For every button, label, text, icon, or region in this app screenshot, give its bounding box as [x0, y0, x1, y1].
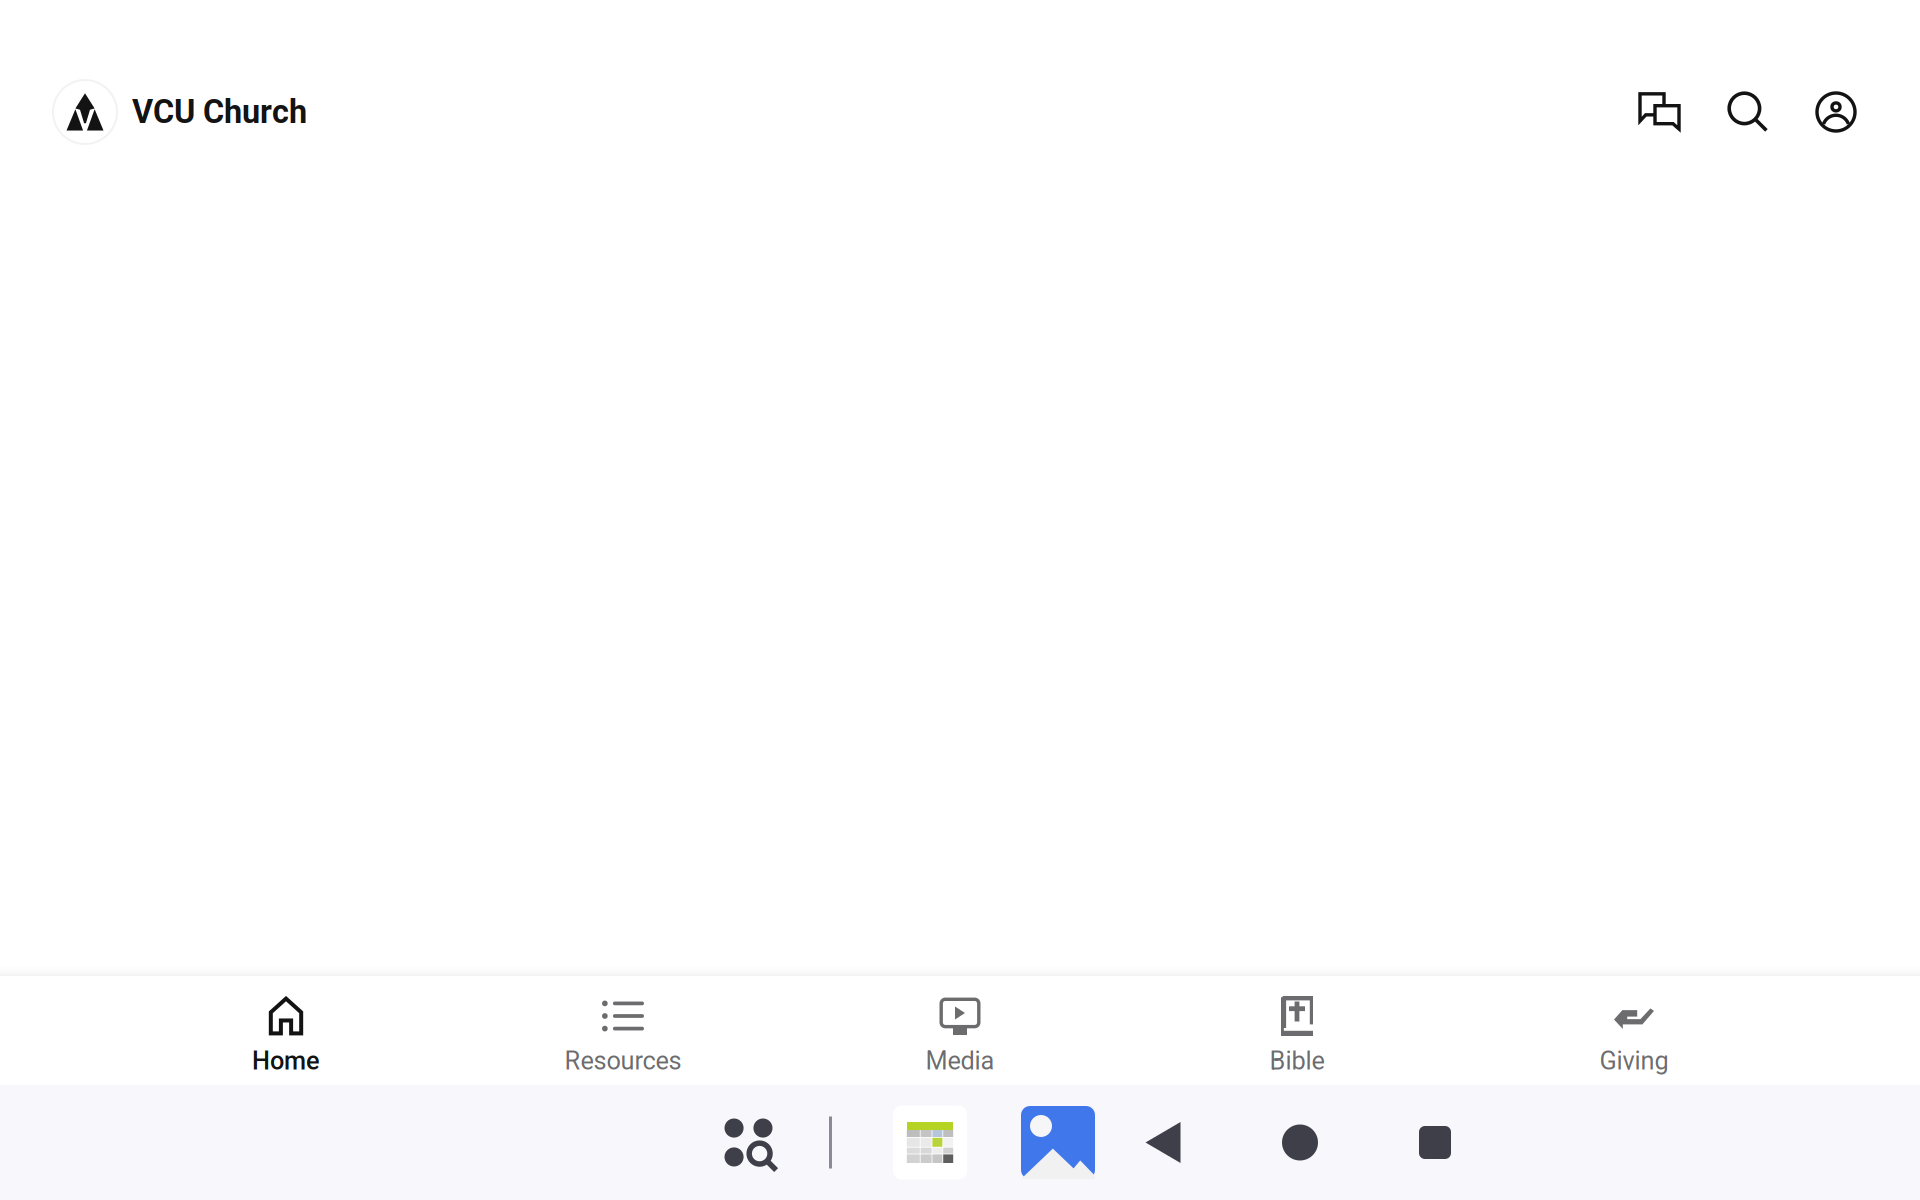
staticText: Bible [1269, 1046, 1324, 1076]
staticText: Resources [564, 1046, 681, 1076]
button[interactable]: Giving [1465, 976, 1802, 1085]
button[interactable]: Home [117, 976, 454, 1085]
button[interactable]: Recent app [893, 1105, 967, 1179]
button[interactable]: Home [1260, 1096, 1340, 1188]
button[interactable]: All apps [724, 1096, 777, 1188]
button[interactable]: VCU Church [0, 80, 323, 144]
staticText: Giving [1599, 1046, 1668, 1076]
button[interactable]: Search [1704, 77, 1792, 147]
button[interactable]: Bible [1128, 976, 1465, 1085]
button[interactable]: Photos [1021, 1106, 1095, 1179]
button[interactable]: Back [1123, 1096, 1203, 1188]
button[interactable]: Messages [1616, 77, 1704, 147]
button[interactable]: Account [1792, 77, 1880, 147]
button[interactable]: Media [791, 976, 1128, 1085]
staticText: Media [925, 1046, 994, 1076]
staticText: VCU Church [132, 93, 307, 131]
staticText: Home [252, 1046, 320, 1076]
button[interactable]: Recents [1395, 1096, 1475, 1188]
button[interactable]: Resources [454, 976, 791, 1085]
